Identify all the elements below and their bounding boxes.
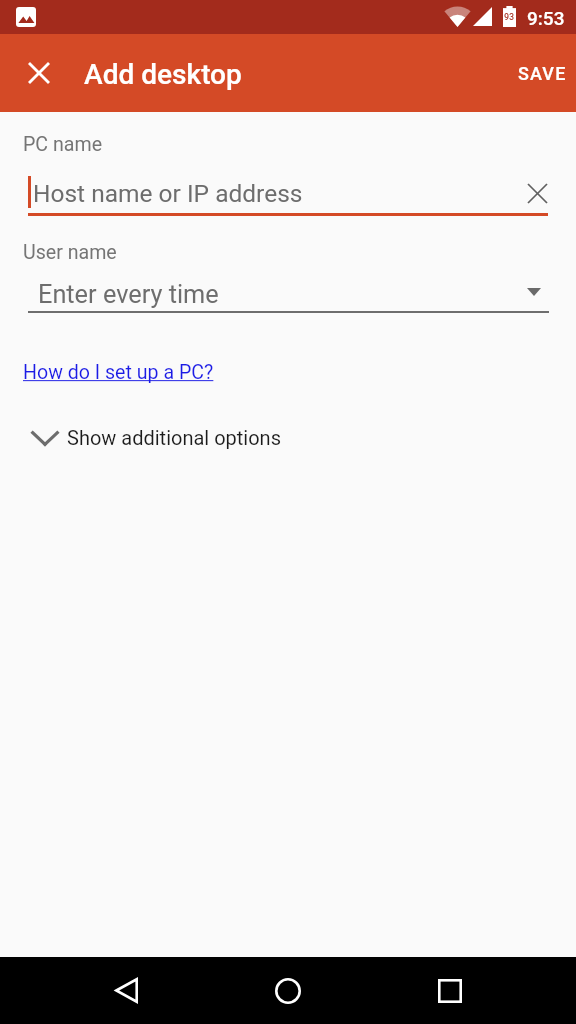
staticText: Host name or IP address <box>33 179 303 208</box>
button[interactable]: SAVE <box>506 48 576 99</box>
button[interactable]: Clear <box>519 175 555 211</box>
button[interactable]: Close <box>15 49 63 97</box>
staticText: 93 <box>504 12 515 23</box>
staticText: Add desktop <box>84 58 242 91</box>
staticText: Show additional options <box>67 426 281 449</box>
staticText: User name <box>23 241 117 264</box>
button[interactable]: Enter every time <box>0 269 576 315</box>
button[interactable]: Home <box>250 957 326 1024</box>
staticText: PC name <box>23 133 103 156</box>
staticText: How do I set up a PC? <box>23 361 214 384</box>
button[interactable]: Back <box>88 957 164 1024</box>
staticText: Enter every time <box>38 280 219 310</box>
button[interactable]: Show additional options <box>0 415 576 455</box>
button[interactable]: Host name or IP address <box>0 170 576 216</box>
staticText: 9:53 <box>527 7 565 29</box>
button[interactable]: How do I set up a PC? <box>23 361 214 384</box>
staticText: SAVE <box>518 63 567 84</box>
button[interactable]: Recent apps <box>412 957 488 1024</box>
